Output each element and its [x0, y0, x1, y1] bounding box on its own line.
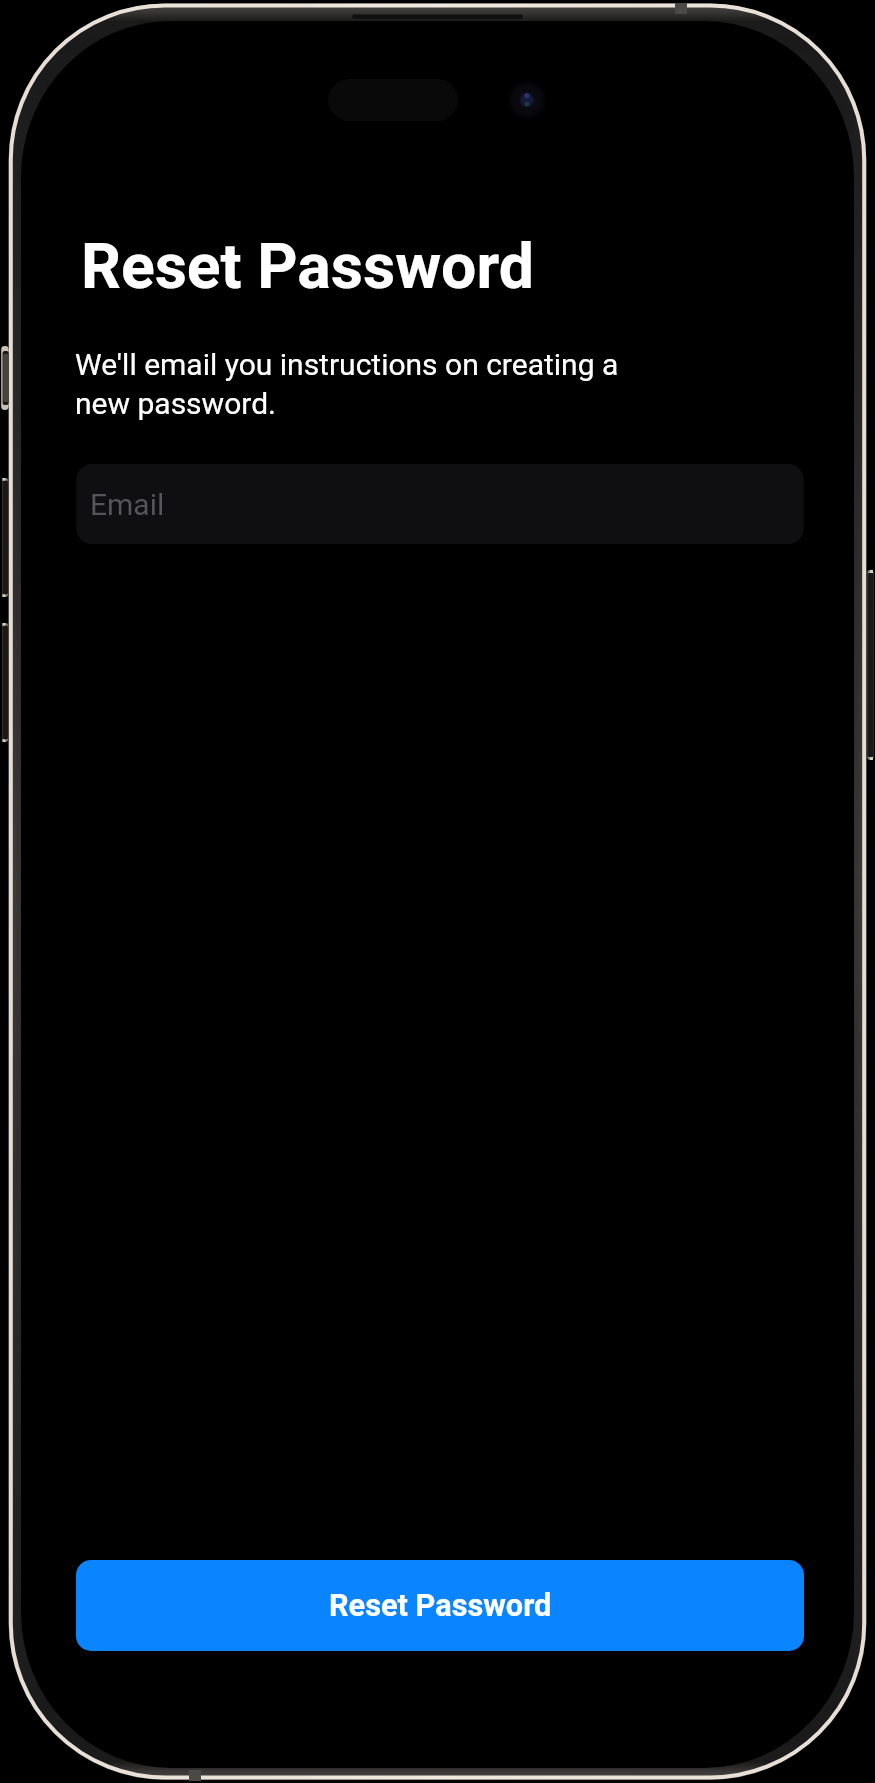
button[interactable]: Reset Password: [76, 1560, 804, 1651]
button[interactable]: Email address input field: [76, 464, 804, 544]
staticText: Email: [90, 487, 165, 522]
staticText: Reset Password: [81, 230, 534, 303]
staticText: Reset Password: [329, 1588, 552, 1624]
staticText: We'll email you instructions on creating…: [75, 347, 655, 421]
